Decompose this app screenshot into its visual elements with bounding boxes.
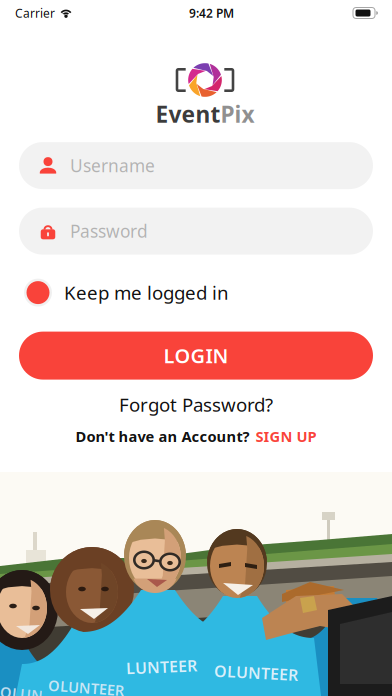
button[interactable]: Keep me logged in (0, 274, 392, 312)
button[interactable]: SIGN UP (255, 427, 316, 446)
staticText: Pix (220, 99, 254, 129)
staticText: LUNTEER (126, 656, 197, 677)
button[interactable]: LOGIN (0, 332, 392, 380)
staticText: Event (155, 99, 220, 129)
staticText: Don't have an Account? (75, 427, 249, 446)
staticText: 9:42 PM (189, 5, 234, 21)
staticText: Carrier (15, 5, 55, 21)
staticText: Forgot Password? (119, 392, 273, 417)
staticText: SIGN UP (255, 427, 316, 446)
button[interactable]: Username (19, 142, 373, 189)
staticText: Password (70, 220, 148, 243)
staticText: Username (70, 154, 155, 177)
staticText: LOGIN (163, 342, 228, 369)
staticText: OLUNTEER (48, 678, 124, 696)
staticText: OLUNTEER (214, 662, 298, 683)
staticText: Keep me logged in (64, 280, 229, 305)
staticText: OLUN (0, 684, 43, 696)
button[interactable]: Forgot Password? (119, 394, 273, 416)
button[interactable]: Password (19, 208, 373, 255)
